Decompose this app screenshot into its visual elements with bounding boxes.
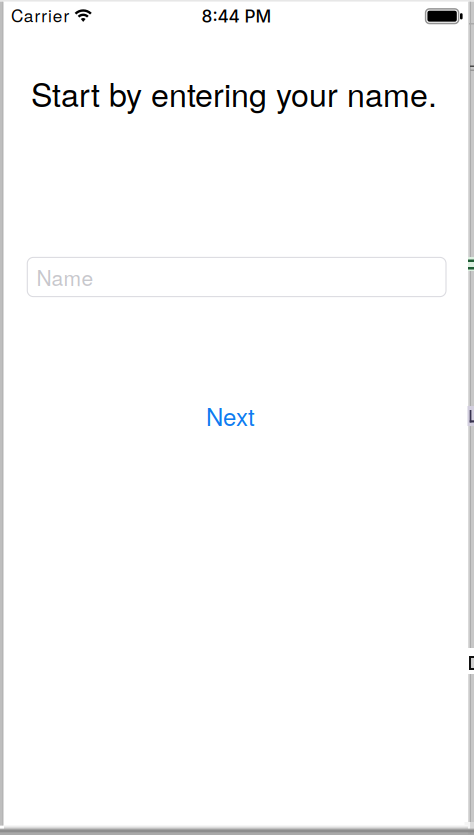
staticText: Carrier bbox=[11, 3, 70, 27]
staticText: Next bbox=[206, 398, 255, 433]
button[interactable]: Name bbox=[27, 257, 446, 297]
staticText: 8:44 PM bbox=[201, 6, 271, 27]
staticText: Start by entering your name. bbox=[31, 70, 437, 116]
staticText: Name bbox=[36, 262, 93, 292]
button[interactable]: Next bbox=[206, 398, 255, 433]
